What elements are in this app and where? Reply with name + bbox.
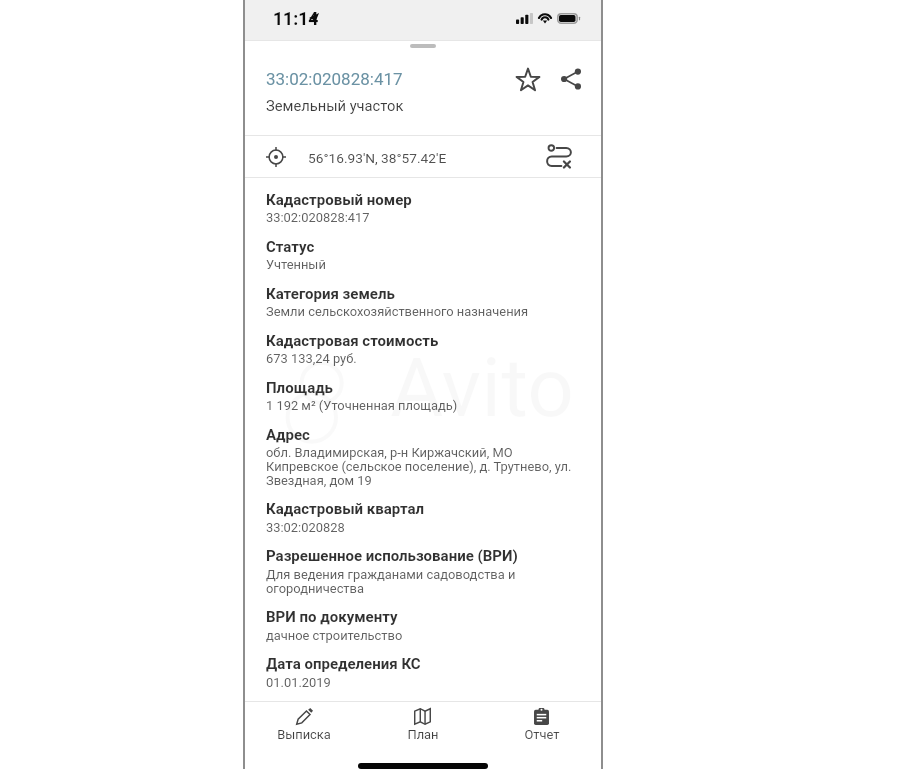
staticText: Кадастровая стоимость	[266, 332, 439, 350]
staticText: Адрес	[266, 426, 310, 444]
staticText: Кадастровый номер	[266, 191, 412, 209]
staticText: Отчет	[524, 727, 560, 742]
staticText: 11:14	[273, 9, 319, 30]
staticText: 56°16.93'N, 38°57.42'E	[308, 150, 447, 166]
staticText: ВРИ по документу	[266, 608, 398, 626]
staticText: Категория земель	[266, 285, 395, 303]
staticText: Площадь	[266, 379, 333, 397]
button[interactable]: Add to favorites	[506, 58, 550, 102]
staticText: Разрешенное использование (ВРИ)	[266, 547, 518, 565]
staticText: 1 192 м² (Уточненная площадь)	[266, 398, 458, 413]
button[interactable]: Route	[535, 136, 579, 177]
staticText: Статус	[266, 238, 315, 256]
staticText: Земельный участок	[266, 97, 404, 114]
button[interactable]: 56°16.93'N, 38°57.42'E	[245, 136, 601, 177]
staticText: 33:02:020828:417	[266, 210, 370, 225]
button[interactable]: План	[363, 702, 482, 750]
button[interactable]: Share	[549, 57, 593, 101]
button[interactable]: Отчет	[482, 702, 601, 750]
staticText: Учтенный	[266, 257, 326, 272]
staticText: 33:02:020828	[266, 520, 345, 535]
staticText: Для ведения гражданами садоводства и ого…	[266, 567, 516, 596]
staticText: Дата определения КС	[266, 655, 421, 673]
staticText: 01.01.2019	[266, 675, 331, 690]
staticText: Кадастровый квартал	[266, 500, 425, 518]
staticText: Avito	[390, 340, 574, 436]
staticText: Выписка	[277, 727, 331, 742]
staticText: обл. Владимирская, р-н Киржачский, МО Ки…	[266, 445, 572, 488]
staticText: дачное строительство	[266, 628, 403, 643]
staticText: 673 133,24 руб.	[266, 351, 357, 366]
staticText: План	[407, 727, 439, 742]
button[interactable]: Выписка	[245, 702, 363, 750]
staticText: Земли сельскохозяйственного назначения	[266, 304, 529, 319]
staticText: 33:02:020828:417	[266, 69, 403, 89]
